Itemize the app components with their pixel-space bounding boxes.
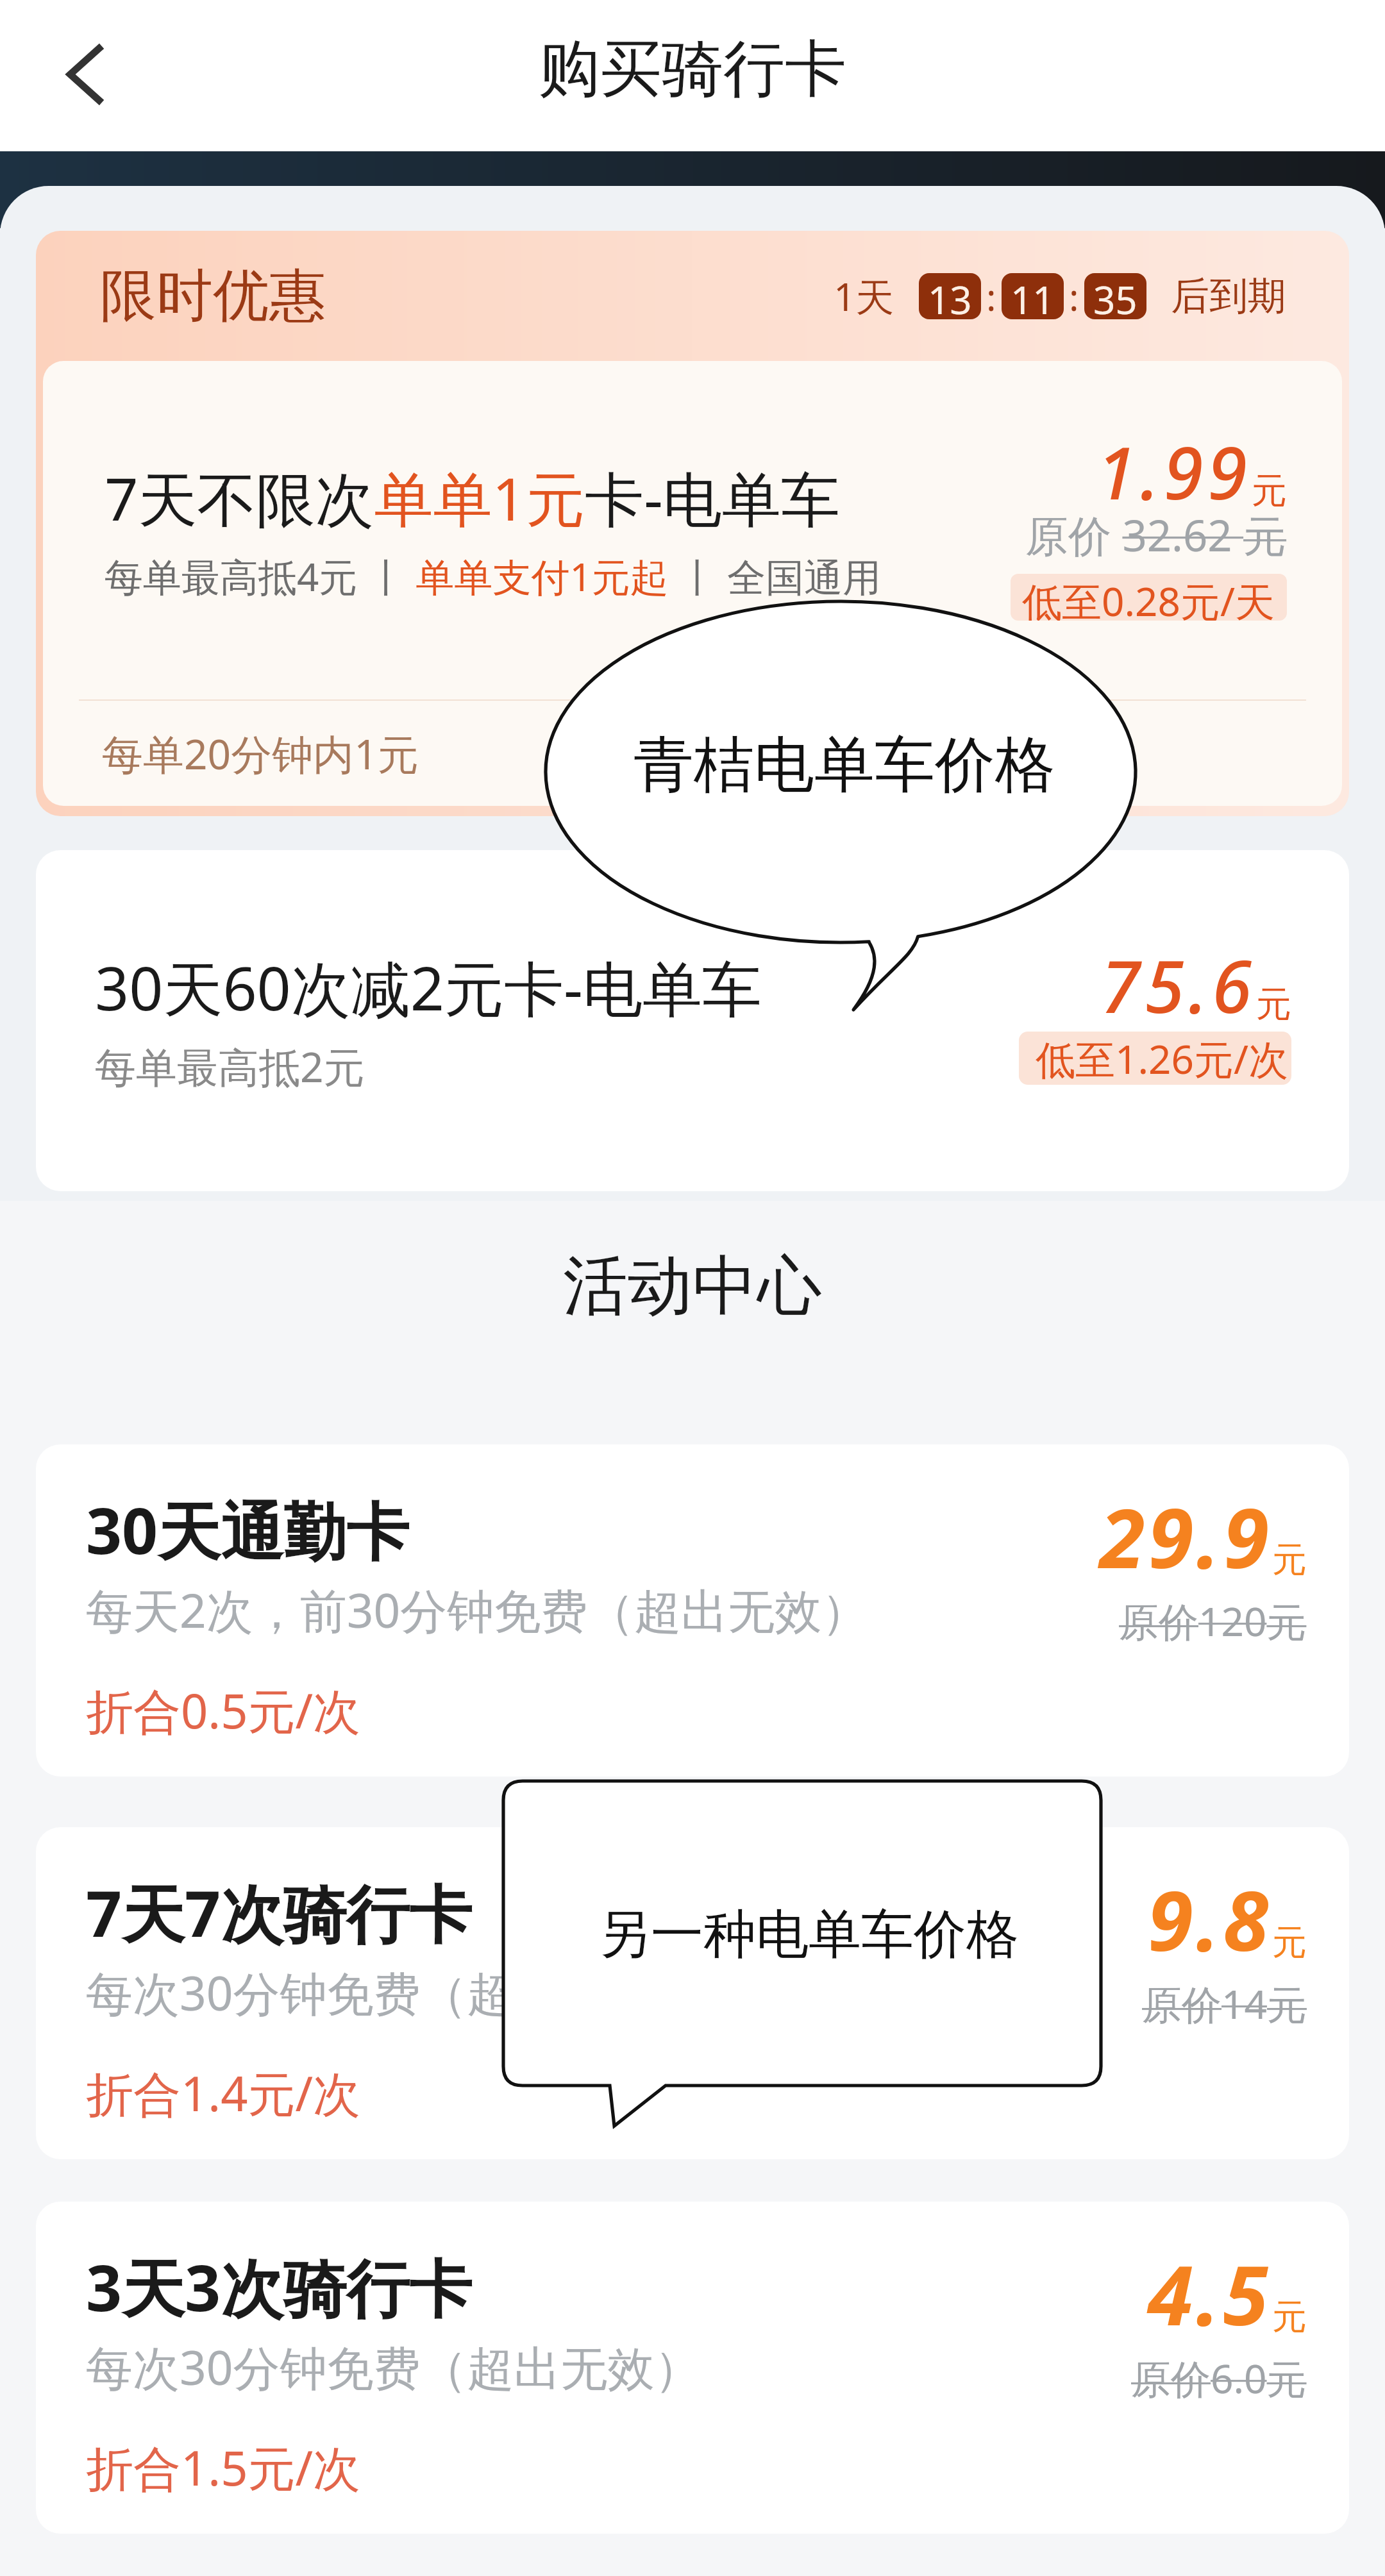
staticText: 后到期 [1171,272,1286,321]
staticText: 购买骑行卡 [539,31,846,108]
button[interactable]: 3天3次骑行卡 [36,2202,1349,2534]
staticText: 3天3次骑行卡 [86,2244,473,2330]
staticText: 1天 [834,270,894,322]
button[interactable]: 7天7次骑行卡 [36,1827,1349,2159]
button[interactable]: 限时优惠 [36,231,1349,816]
staticText: 青桔电单车价格 [634,727,1055,803]
staticText: 元 [1272,1538,1307,1582]
staticText: 7天不限次单单1元卡-电单车 [105,458,840,539]
staticText: : [986,271,996,322]
staticText: 另一种电单车价格 [598,1902,1019,1968]
staticText: : [1069,271,1079,322]
staticText: 每次30分钟免费（超出无效） [86,2335,701,2399]
staticText: 75.6 [1101,936,1256,1034]
staticText: 30天60次减2元卡-电单车 [95,947,762,1028]
staticText: 每天2次，前30分钟免费（超出无效） [86,1578,869,1642]
staticText: 折合1.4元/次 [86,2061,361,2125]
staticText: 1.99 [1096,422,1252,521]
staticText: 每单最高抵4元 丨 单单支付1元起 丨 全国通用 [105,550,882,603]
staticText: 元 [1252,469,1287,513]
staticText: 11 [1011,273,1055,319]
staticText: 每单20分钟内1元 [102,726,419,782]
staticText: 低至0.28元/天 [1022,574,1275,621]
staticText: 原价14元 [1142,1977,1307,2031]
staticText: 每单最高抵2元 [95,1039,365,1094]
staticText: 4.5 [1148,2237,1272,2349]
staticText: 低至1.26元/次 [1036,1032,1289,1085]
staticText: 活动中心 [563,1246,822,1327]
staticText: 每次30分钟免费（超出无效） [86,1961,701,2025]
staticText: 原价120元 [1119,1594,1307,1648]
staticText: 元 [1272,2295,1307,2339]
staticText: 35 [1093,273,1137,319]
staticText: 30天通勤卡 [86,1487,410,1573]
staticText: 限时优惠 [100,260,326,331]
staticText: 7天7次骑行卡 [86,1869,473,1955]
staticText: 原价6.0元 [1131,2351,1307,2405]
button[interactable]: 30天通勤卡 [36,1444,1349,1777]
staticText: 折合1.5元/次 [86,2435,361,2500]
staticText: 原价 32.62 元 [1025,505,1287,564]
staticText: 元 [1256,982,1291,1026]
staticText: 元 [1272,1921,1307,1964]
button[interactable]: 30天60次减2元卡-电单车 [36,850,1349,1191]
button[interactable]: Back [24,13,146,135]
staticText: 折合0.5元/次 [86,1678,361,1743]
staticText: 13 [928,273,972,319]
staticText: 29.9 [1100,1480,1272,1592]
staticText: 9.8 [1148,1863,1272,1975]
